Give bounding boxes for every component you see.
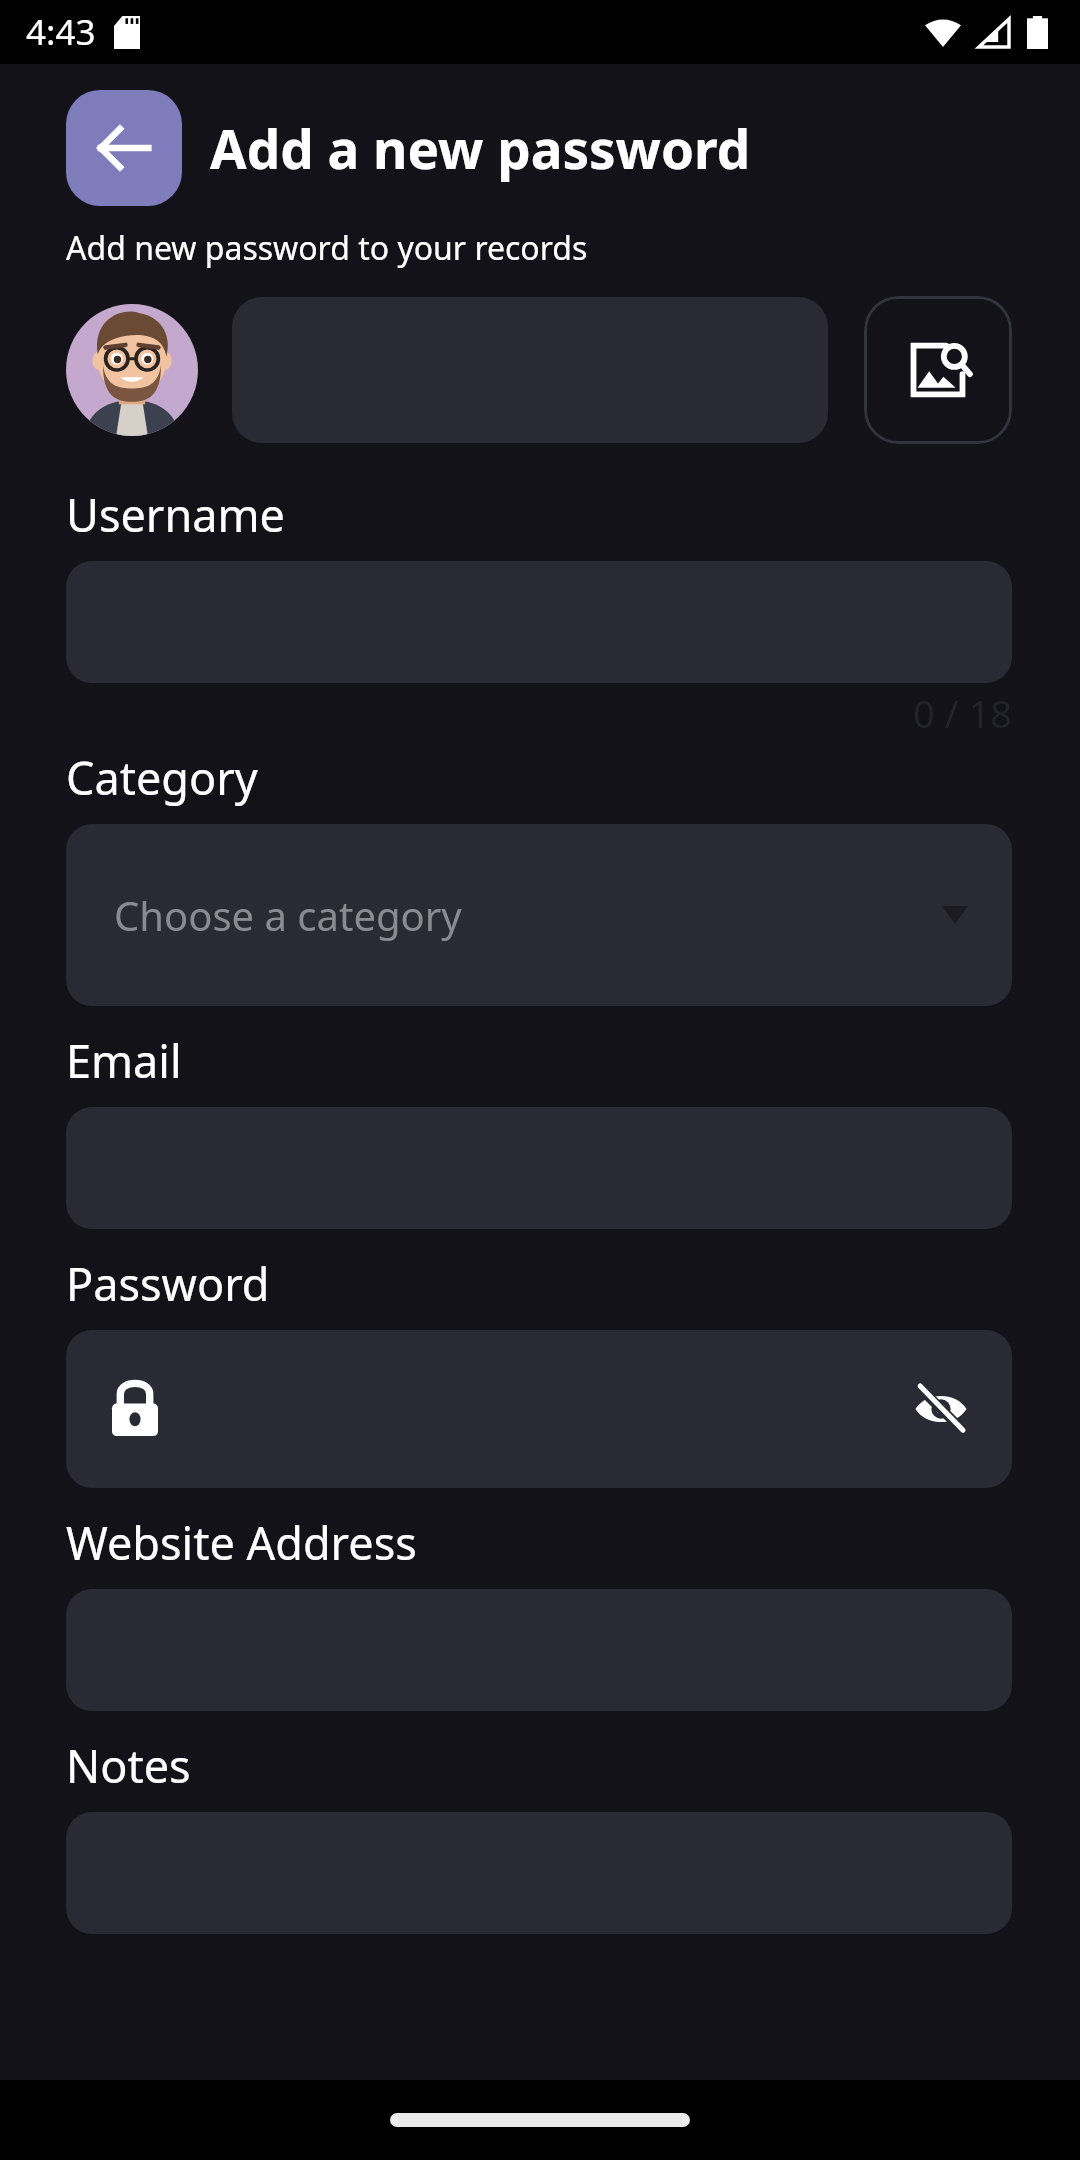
staticText: Email: [66, 1030, 182, 1091]
staticText: Choose a category: [114, 888, 462, 942]
button[interactable]: Show password: [910, 1378, 972, 1440]
other: Password: [112, 1382, 158, 1436]
button[interactable]: Choose a category: [66, 824, 1012, 1006]
staticText: Category: [66, 747, 258, 808]
staticText: Website Address: [66, 1512, 417, 1573]
staticText: Password: [66, 1253, 270, 1314]
staticText: 4:43: [26, 8, 96, 56]
button[interactable]: Search image: [864, 296, 1012, 444]
button[interactable]: Profile picture: [66, 304, 198, 436]
staticText: Add new password to your records: [66, 226, 588, 270]
staticText: Add a new password: [210, 112, 751, 184]
staticText: Notes: [66, 1735, 191, 1796]
button[interactable]: Back: [66, 90, 182, 206]
staticText: Username: [66, 484, 285, 545]
button[interactable]: Password: [66, 1330, 1012, 1488]
